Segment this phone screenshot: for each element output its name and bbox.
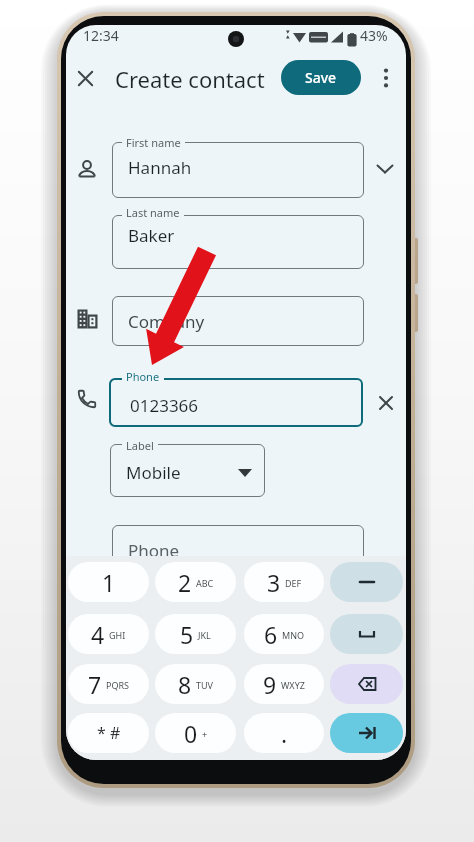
staticText: Company <box>128 310 205 333</box>
staticText: 0123366 <box>130 394 199 417</box>
staticText: ABC <box>196 577 214 589</box>
staticText: 9 <box>263 669 277 700</box>
button[interactable] <box>110 444 265 497</box>
staticText: WXYZ <box>281 679 305 691</box>
staticText: First name <box>126 135 181 150</box>
button[interactable]: 8 <box>155 664 236 704</box>
button[interactable] <box>109 378 363 427</box>
button[interactable] <box>330 664 403 704</box>
staticText: Phone <box>126 369 160 384</box>
staticText: 12:34 <box>83 26 119 45</box>
button[interactable] <box>376 164 394 174</box>
staticText: TUV <box>196 679 213 691</box>
button[interactable] <box>112 525 364 581</box>
button[interactable]: 1 <box>68 562 149 602</box>
staticText: 43% <box>360 26 388 45</box>
staticText: 7 <box>88 669 102 700</box>
button[interactable]: 9 <box>244 664 324 704</box>
staticText: PQRS <box>106 679 130 691</box>
button[interactable] <box>330 614 403 654</box>
staticText: 2 <box>178 567 192 598</box>
button[interactable] <box>112 215 364 269</box>
button[interactable]: . <box>244 713 324 753</box>
button[interactable] <box>330 562 403 602</box>
staticText: Phone <box>128 539 180 562</box>
staticText: 5 <box>180 619 194 650</box>
staticText: JKL <box>198 629 211 641</box>
staticText: 0 <box>184 718 198 749</box>
button[interactable] <box>330 713 403 753</box>
staticText: Save <box>305 68 337 87</box>
staticText: MNO <box>282 629 305 641</box>
staticText: Create contact <box>115 64 265 94</box>
staticText: Label <box>126 438 154 453</box>
staticText: 6 <box>264 619 278 650</box>
button[interactable] <box>112 296 364 346</box>
staticText: DEF <box>285 577 302 589</box>
staticText: GHI <box>109 629 126 641</box>
staticText: Mobile <box>126 461 181 484</box>
button[interactable]: 3 <box>244 562 324 602</box>
button[interactable]: 6 <box>244 614 324 654</box>
staticText: Hannah <box>128 156 192 179</box>
button[interactable] <box>379 396 393 410</box>
staticText: 8 <box>178 669 192 700</box>
staticText: + <box>202 728 208 740</box>
button[interactable]: 4 <box>68 614 149 654</box>
button[interactable]: * # <box>68 713 149 753</box>
staticText: 4 <box>91 619 105 650</box>
button[interactable] <box>112 142 364 198</box>
staticText: * # <box>97 722 121 744</box>
button[interactable]: 5 <box>155 614 236 654</box>
button[interactable]: Save <box>281 60 361 95</box>
staticText: 1 <box>102 567 116 598</box>
staticText: 3 <box>267 567 281 598</box>
staticText: . <box>281 718 288 749</box>
staticText: Baker <box>128 224 175 247</box>
button[interactable] <box>78 71 93 86</box>
button[interactable] <box>379 69 393 87</box>
button[interactable]: 2 <box>155 562 236 602</box>
button[interactable]: 7 <box>68 664 149 704</box>
staticText: Last name <box>126 205 180 220</box>
button[interactable]: 0 <box>155 713 236 753</box>
